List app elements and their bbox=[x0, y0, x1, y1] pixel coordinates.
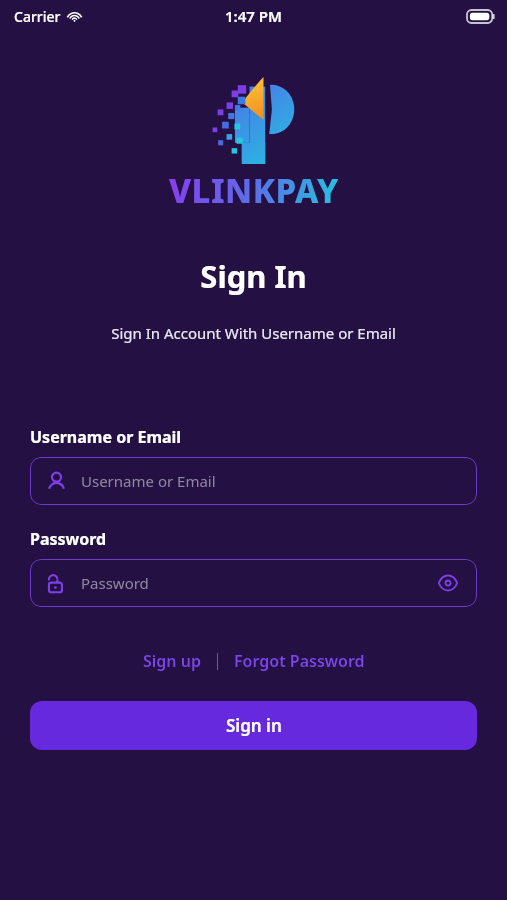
staticText: Sign up bbox=[143, 650, 201, 672]
button[interactable]: Forgot Password bbox=[230, 648, 369, 674]
staticText: Sign In bbox=[0, 255, 507, 297]
button[interactable]: Sign up bbox=[139, 648, 205, 674]
staticText: Carrier bbox=[14, 7, 61, 26]
button[interactable]: Sign in bbox=[30, 701, 477, 750]
button[interactable]: Username or Email bbox=[30, 457, 477, 505]
staticText: Forgot Password bbox=[234, 650, 365, 672]
staticText: Username or Email bbox=[30, 426, 507, 448]
staticText: Sign in bbox=[226, 714, 282, 737]
button[interactable]: Show password bbox=[433, 568, 463, 598]
staticText: Password bbox=[30, 528, 507, 550]
staticText: 1:47 PM bbox=[225, 6, 282, 26]
button[interactable]: Password bbox=[30, 559, 477, 607]
staticText: VLINKPAY bbox=[169, 168, 339, 213]
staticText: Username or Email bbox=[81, 471, 463, 491]
staticText: Sign In Account With Username or Email bbox=[0, 323, 507, 343]
staticText: Password bbox=[81, 573, 433, 593]
